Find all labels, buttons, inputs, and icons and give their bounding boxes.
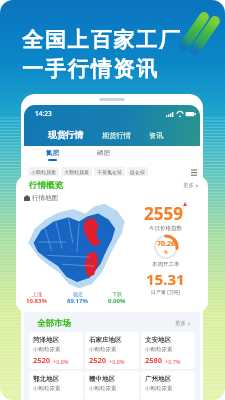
staticText: 本周开工率 <box>152 261 180 268</box>
staticText: 广州地区 <box>145 375 171 383</box>
button[interactable]: 大颗粒尿素 <box>61 167 92 177</box>
staticText: 下跌 <box>112 291 122 297</box>
staticText: 氮肥 <box>46 149 59 157</box>
staticText: 行情概览 <box>29 180 63 191</box>
staticText: 小颗粒尿素 <box>89 385 117 392</box>
button[interactable]: 资讯 <box>149 131 164 140</box>
staticText: 石家庄地区 <box>89 336 122 344</box>
button[interactable]: 更多 <box>183 182 199 189</box>
staticText: 小颗粒尿素 <box>33 385 61 392</box>
button[interactable]: 磷肥 <box>97 149 110 157</box>
button[interactable]: 文安地区 <box>141 332 195 369</box>
staticText: +0.8% <box>109 358 125 365</box>
staticText: 小颗粒尿素 <box>89 346 117 353</box>
button[interactable]: 鄂北地区 <box>29 371 83 400</box>
staticText: 磷肥 <box>97 149 110 157</box>
button[interactable]: 小颗粒尿素 <box>28 167 59 177</box>
staticText: 15.31 <box>146 269 185 289</box>
staticText: 赣中地区 <box>89 375 115 383</box>
staticText: 全部市场 <box>37 318 71 329</box>
staticText: 14:23 <box>35 109 52 118</box>
staticText: 2520 <box>89 355 107 365</box>
staticText: 2580 <box>145 355 163 365</box>
staticText: 更多 <box>175 320 186 327</box>
staticText: 小颗粒尿素 <box>145 346 173 353</box>
button[interactable]: More categories <box>191 169 197 175</box>
button[interactable]: 石家庄地区 <box>85 332 139 369</box>
staticText: 菏泽地区 <box>33 336 59 344</box>
staticText: 稳定 <box>73 291 83 297</box>
staticText: 0.00% <box>108 297 126 305</box>
staticText: 资讯 <box>149 131 164 140</box>
button[interactable]: 硫化铵 <box>127 167 148 177</box>
staticText: 上涨 <box>32 291 42 297</box>
staticText: 硫化铵 <box>130 169 145 175</box>
staticText: 小颗粒尿素 <box>31 169 56 175</box>
button[interactable]: 氮肥 <box>46 149 59 161</box>
staticText: +0.8% <box>53 358 69 365</box>
staticText: 期货行情 <box>102 131 131 140</box>
staticText: +0.7% <box>165 358 181 365</box>
staticText: 文安地区 <box>145 336 171 344</box>
staticText: % <box>164 249 168 255</box>
staticText: 现货行情 <box>48 130 84 141</box>
staticText: 全国上百家工厂 <box>22 27 182 53</box>
staticText: 鄂北地区 <box>33 375 59 383</box>
staticText: 大颗粒尿素 <box>64 169 89 175</box>
staticText: 今日价格指数 <box>149 225 182 232</box>
button[interactable]: 现货行情 <box>48 130 84 141</box>
staticText: 行情地图 <box>32 194 58 202</box>
staticText: 2520 <box>33 355 51 365</box>
staticText: 更多 <box>183 182 194 189</box>
button[interactable]: 赣中地区 <box>85 371 139 400</box>
staticText: 干基氯化铵 <box>97 169 122 175</box>
button[interactable]: 更多 <box>175 320 191 327</box>
button[interactable]: 期货行情 <box>102 131 131 140</box>
staticText: 89.17% <box>67 297 88 305</box>
staticText: 小颗粒尿素 <box>33 346 61 353</box>
button[interactable]: 干基氯化铵 <box>94 167 125 177</box>
staticText: 日产量 (万吨) <box>151 289 181 296</box>
staticText: 10.83% <box>26 297 47 305</box>
staticText: 2559 <box>144 202 183 225</box>
button[interactable]: 菏泽地区 <box>29 332 83 369</box>
button[interactable]: 广州地区 <box>141 371 195 400</box>
staticText: 一手行情资讯 <box>22 56 159 82</box>
staticText: 小颗粒尿素 <box>145 385 173 392</box>
staticText: 70.26 <box>157 239 175 249</box>
